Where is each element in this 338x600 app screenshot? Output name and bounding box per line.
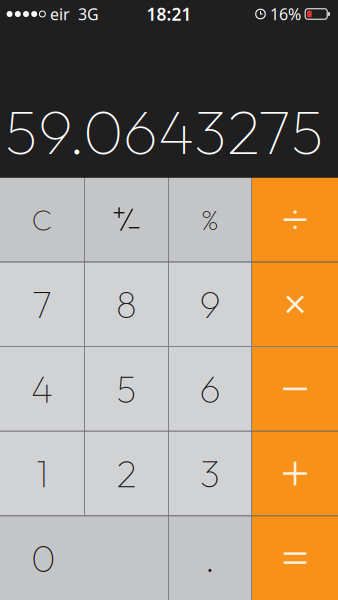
- button[interactable]: 7: [0, 262, 84, 346]
- button[interactable]: 0: [0, 516, 168, 600]
- button[interactable]: Subtract: [252, 347, 338, 431]
- button[interactable]: Multiply: [252, 262, 338, 346]
- staticText: %: [201, 202, 220, 237]
- staticText: 4: [31, 365, 53, 412]
- staticText: 3: [200, 450, 220, 497]
- button[interactable]: 4: [0, 347, 84, 431]
- staticText: 59.0643275: [5, 93, 324, 170]
- staticText: 18:21: [146, 2, 191, 25]
- staticText: 5: [117, 365, 137, 412]
- button[interactable]: C: [0, 178, 84, 262]
- staticText: eir: [50, 3, 70, 25]
- button[interactable]: Divide: [252, 178, 338, 262]
- button[interactable]: 5: [85, 347, 168, 431]
- button[interactable]: %: [169, 178, 251, 262]
- staticText: 8: [116, 281, 137, 328]
- staticText: 7: [32, 281, 52, 328]
- staticText: 1: [36, 450, 48, 497]
- button[interactable]: 2: [85, 432, 168, 515]
- button[interactable]: 1: [0, 432, 84, 515]
- staticText: 0: [31, 535, 56, 582]
- button[interactable]: Plus minus: [85, 178, 168, 262]
- button[interactable]: Add: [252, 432, 338, 515]
- staticText: C: [32, 201, 53, 238]
- button[interactable]: Equals: [252, 516, 338, 600]
- staticText: .: [205, 535, 216, 582]
- button[interactable]: 9: [169, 262, 251, 346]
- staticText: 9: [200, 281, 221, 328]
- staticText: 6: [200, 365, 221, 412]
- button[interactable]: 3: [169, 432, 251, 515]
- button[interactable]: 6: [169, 347, 251, 431]
- staticText: 16%: [270, 3, 301, 25]
- staticText: 2: [117, 450, 137, 497]
- button[interactable]: 8: [85, 262, 168, 346]
- button[interactable]: .: [169, 516, 251, 600]
- staticText: 3G: [78, 3, 99, 25]
